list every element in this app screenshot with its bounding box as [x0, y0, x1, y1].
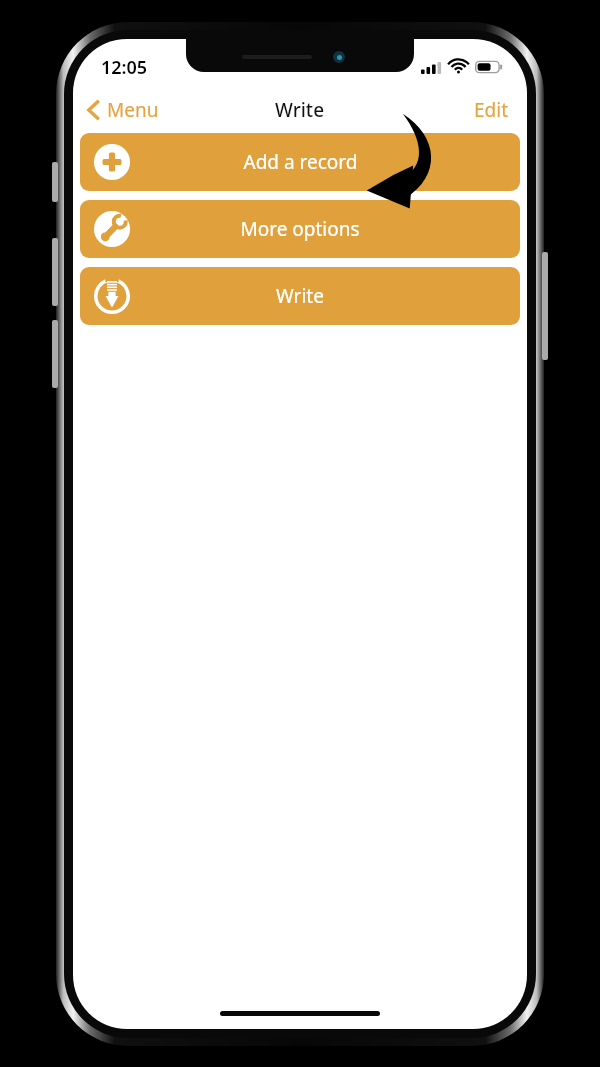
button[interactable]: More options — [80, 200, 520, 258]
button[interactable]: Write — [80, 267, 520, 325]
staticText: Write — [275, 97, 325, 123]
staticText: Add a record — [243, 149, 358, 175]
other: Pointer arrow — [365, 103, 451, 223]
staticText: Write — [276, 283, 324, 309]
staticText: 12:05 — [101, 55, 148, 80]
staticText: Edit — [474, 97, 509, 123]
button[interactable]: Edit — [456, 90, 527, 130]
button[interactable]: Add a record — [80, 133, 520, 191]
button[interactable]: Menu — [73, 92, 171, 128]
staticText: Menu — [107, 97, 159, 123]
staticText: More options — [240, 216, 360, 242]
